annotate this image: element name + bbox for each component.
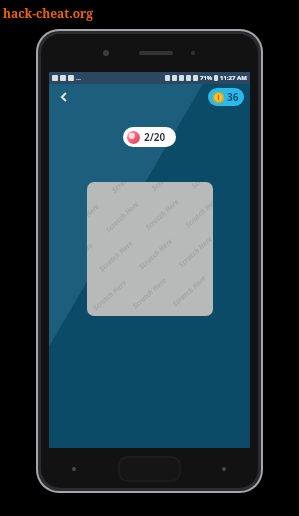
staticText: ... [76, 74, 82, 82]
staticText: 71% [200, 74, 213, 82]
staticText: 11:27 AM [220, 74, 247, 82]
button[interactable]: Scratch card [87, 182, 213, 316]
staticText: 36 [227, 90, 239, 104]
button[interactable]: 36 [208, 88, 244, 106]
button[interactable]: 2/20 [123, 127, 176, 147]
staticText: 2/20 [144, 130, 166, 144]
staticText: hack-cheat.org [3, 5, 94, 21]
button[interactable]: Back [53, 86, 75, 108]
